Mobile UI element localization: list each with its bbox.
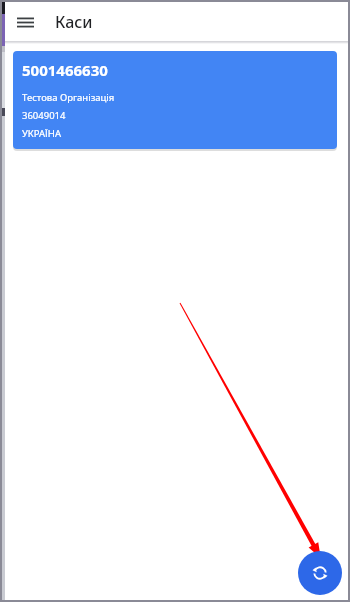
staticText: Каси [55,11,93,33]
staticText: 36049014 [22,109,66,122]
staticText: УКРАЇНА [22,127,61,140]
button[interactable]: Open navigation menu [9,6,41,38]
staticText: 5001466630 [22,60,108,80]
button[interactable]: Refresh [298,551,342,595]
staticText: Тестова Організація [22,91,115,104]
button[interactable]: 5001466630 [13,51,337,149]
